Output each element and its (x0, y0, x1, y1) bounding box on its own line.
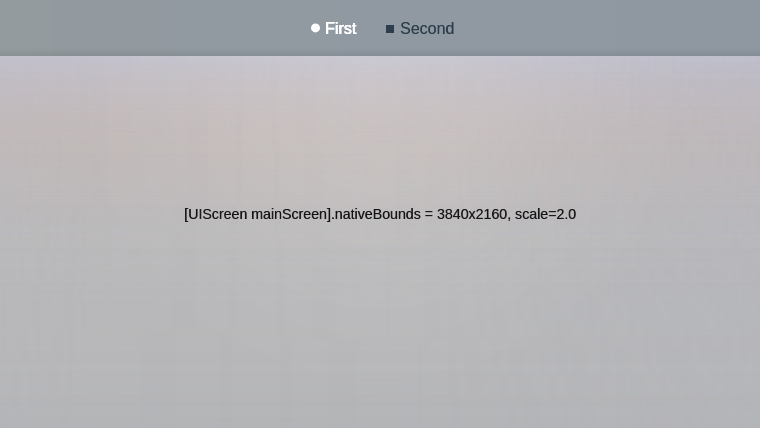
staticText: [UIScreen mainScreen].nativeBounds = 384… (184, 206, 576, 222)
staticText: [UIScreen mainScreen].nativeBounds = 384… (184, 206, 576, 222)
staticText: First (325, 20, 357, 38)
button[interactable]: Second tab (374, 6, 467, 52)
staticText: Second (400, 20, 455, 38)
button[interactable]: First tab, selected (299, 6, 369, 52)
staticText: First (325, 20, 357, 38)
staticText: Second (400, 20, 455, 38)
